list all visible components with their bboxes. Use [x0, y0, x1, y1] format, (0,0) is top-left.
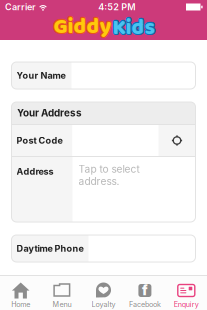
staticText: Kids [112, 10, 154, 44]
staticText: Giddy [53, 10, 111, 44]
button[interactable]: Home [0, 276, 41, 310]
staticText: Loyalty [91, 300, 115, 309]
staticText: Daytime Phone [16, 243, 83, 254]
staticText: Post Code [16, 135, 62, 146]
staticText: Kids [113, 12, 155, 46]
staticText: Giddy [54, 9, 112, 43]
staticText: Kids [114, 11, 156, 45]
staticText: Address [16, 166, 53, 177]
staticText: Giddy [53, 9, 111, 43]
staticText: Kids [111, 11, 153, 45]
staticText: Giddy [53, 9, 111, 43]
button[interactable]: Enquiry [166, 276, 207, 310]
staticText: Giddy [52, 10, 110, 44]
staticText: Kids [113, 10, 155, 44]
staticText: Giddy [54, 11, 112, 45]
staticText: Giddy [55, 10, 113, 44]
button[interactable]: Loyalty [83, 276, 124, 310]
staticText: Facebook [129, 300, 161, 309]
staticText: Your Name [16, 70, 65, 81]
staticText: Your Address [17, 107, 82, 119]
button[interactable]: f [124, 276, 166, 310]
staticText: Tap to select address. [78, 163, 139, 187]
staticText: 4:52 PM [98, 1, 135, 12]
button[interactable]: Menu [41, 276, 83, 310]
staticText: Kids [112, 12, 154, 46]
staticText: Enquiry [174, 300, 199, 309]
staticText: Home [11, 300, 30, 309]
staticText: Menu [53, 300, 72, 309]
staticText: Kids [112, 11, 154, 45]
staticText: Kids [112, 10, 154, 44]
staticText: f [142, 282, 148, 298]
staticText: Giddy [53, 11, 111, 45]
staticText: Kids [112, 12, 154, 46]
staticText: Carrier [5, 1, 36, 12]
staticText: Giddy [53, 11, 111, 45]
